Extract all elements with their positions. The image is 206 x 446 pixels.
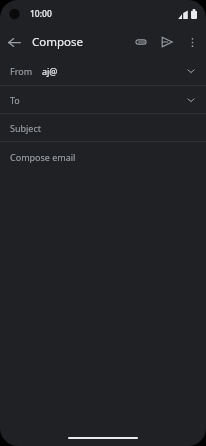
button[interactable]: Subject xyxy=(0,114,206,141)
other: From account xyxy=(184,64,198,78)
button[interactable]: More options xyxy=(180,30,204,54)
staticText: From xyxy=(10,65,33,77)
button[interactable]: Send xyxy=(154,29,180,55)
staticText: Subject xyxy=(10,122,42,134)
staticText: Compose email xyxy=(10,151,76,163)
other: To recipients xyxy=(184,93,198,107)
button[interactable]: Back xyxy=(0,28,28,56)
staticText: Compose xyxy=(32,34,84,50)
button[interactable]: Compose email xyxy=(0,142,206,430)
button[interactable]: Attach file xyxy=(128,29,154,55)
staticText: 10:00 xyxy=(30,8,52,20)
staticText: aj@ xyxy=(42,65,58,77)
staticText: To xyxy=(10,94,20,106)
button[interactable]: To xyxy=(0,86,206,113)
button[interactable]: From xyxy=(0,57,206,85)
